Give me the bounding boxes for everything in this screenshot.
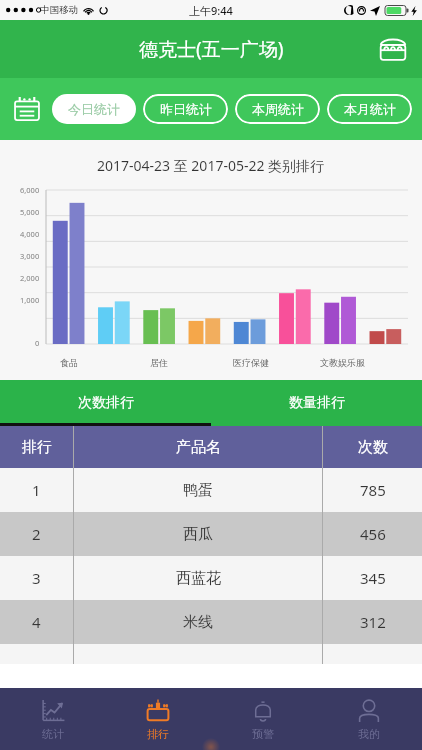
staticText: 6,000 [20, 185, 40, 195]
staticText: 312 [360, 612, 386, 632]
staticText: 昨日统计 [160, 101, 212, 117]
staticText: 次数 [358, 438, 388, 457]
button[interactable]: 我的 [316, 688, 422, 750]
button[interactable]: 次数排行 [0, 380, 211, 426]
staticText: 统计 [42, 727, 64, 741]
button[interactable]: 2 [0, 512, 422, 556]
staticText: 1 [32, 480, 41, 500]
staticText: 5,000 [20, 207, 40, 217]
staticText: 4 [32, 612, 41, 632]
staticText: 排行 [22, 438, 52, 457]
button[interactable]: 昨日统计 [143, 94, 228, 124]
staticText: 3 [32, 568, 41, 588]
staticText: 2017-04-23 至 2017-05-22 类别排行 [97, 156, 325, 175]
staticText: 西瓜 [183, 525, 213, 544]
button[interactable]: 数量排行 [211, 380, 422, 426]
staticText: 医疗保健 [233, 357, 269, 368]
staticText: 我的 [358, 727, 380, 741]
button[interactable]: 4 [0, 600, 422, 644]
staticText: 居住 [150, 357, 168, 368]
staticText: 德克士(五一广场) [139, 36, 284, 62]
button[interactable]: Calendar [10, 92, 44, 126]
staticText: 456 [360, 524, 386, 544]
staticText: 本周统计 [252, 101, 304, 117]
staticText: 本月统计 [344, 101, 396, 117]
staticText: 4,000 [20, 229, 40, 239]
staticText: 中国移动 [40, 4, 78, 16]
staticText: 785 [360, 480, 386, 500]
staticText: 3,000 [20, 251, 40, 261]
staticText: 鸭蛋 [183, 481, 213, 500]
button[interactable]: 统计 [0, 688, 105, 750]
staticText: 数量排行 [289, 394, 345, 412]
staticText: 次数排行 [78, 394, 134, 412]
staticText: 2,000 [20, 273, 40, 283]
staticText: 上午9:44 [189, 3, 233, 18]
staticText: 西蓝花 [176, 569, 221, 588]
button[interactable]: 今日统计 [52, 94, 136, 124]
button[interactable]: 本周统计 [235, 94, 320, 124]
staticText: 1,000 [20, 295, 40, 305]
staticText: 2 [32, 524, 41, 544]
staticText: 排行 [147, 727, 169, 741]
staticText: 0 [35, 338, 40, 348]
staticText: 文教娱乐服务 [320, 357, 366, 368]
staticText: 345 [360, 568, 386, 588]
button[interactable]: 3 [0, 556, 422, 600]
button[interactable]: 本月统计 [327, 94, 412, 124]
button[interactable]: Store [376, 32, 410, 66]
staticText: 食品 [60, 357, 78, 368]
button[interactable]: 排行 [105, 688, 210, 750]
staticText: 米线 [183, 613, 213, 632]
staticText: 预警 [252, 727, 274, 741]
button[interactable]: 1 [0, 468, 422, 512]
staticText: 今日统计 [68, 101, 120, 117]
button[interactable]: 预警 [210, 688, 316, 750]
staticText: 产品名 [176, 438, 221, 457]
